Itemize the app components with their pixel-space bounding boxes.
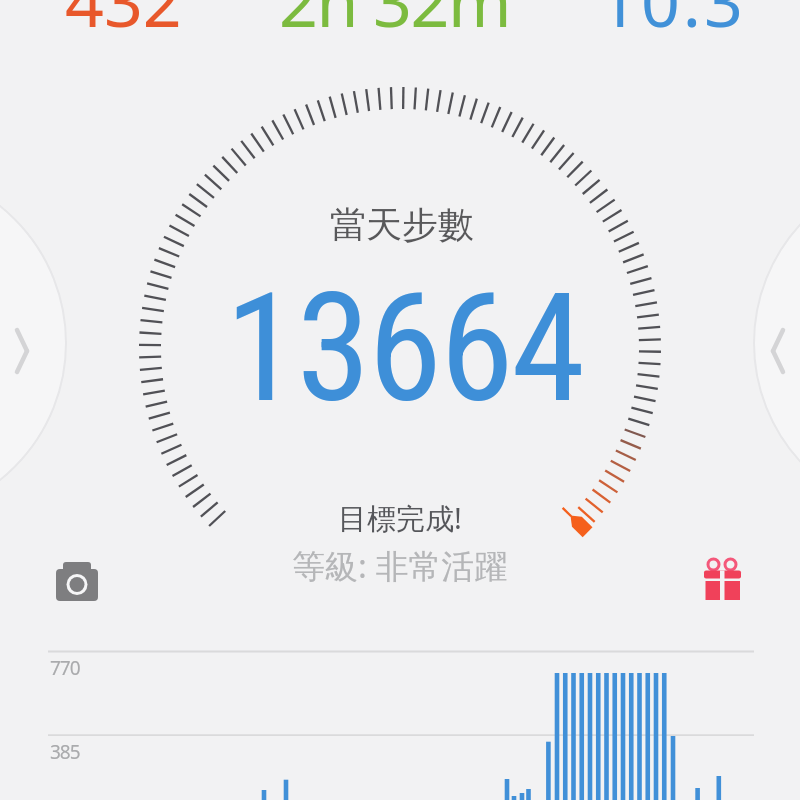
button[interactable] xyxy=(698,552,748,604)
staticText: 770 xyxy=(50,655,80,681)
staticText: 10.3 xyxy=(599,0,746,47)
staticText: 等級: 非常活躍 xyxy=(292,543,508,588)
staticText: 目標完成! xyxy=(338,498,462,538)
button[interactable] xyxy=(0,303,48,399)
button[interactable] xyxy=(752,303,800,399)
staticText: 2h 32m xyxy=(279,0,510,47)
staticText: 432 xyxy=(65,0,182,47)
staticText: 當天步數 xyxy=(330,202,474,247)
staticText: 385 xyxy=(50,739,80,765)
button[interactable] xyxy=(50,556,106,608)
staticText: 13664 xyxy=(225,261,583,437)
